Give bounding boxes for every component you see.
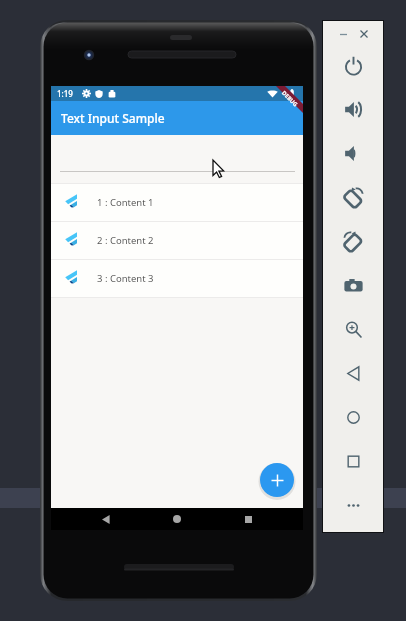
button[interactable]: Minimize — [333, 25, 353, 43]
button[interactable]: Home — [323, 395, 383, 439]
button[interactable]: Recents — [237, 508, 259, 530]
button[interactable]: Close — [354, 25, 374, 43]
button[interactable]: Power — [323, 43, 383, 87]
button[interactable]: Volume down — [323, 131, 383, 175]
staticText: 2 : Content 2 — [97, 234, 154, 247]
button[interactable]: Back — [95, 508, 117, 530]
button[interactable]: 1 : Content 1 — [51, 184, 303, 221]
button[interactable]: Rotate right — [323, 219, 383, 263]
button[interactable]: Screenshot — [323, 263, 383, 307]
button[interactable]: Overview — [323, 439, 383, 483]
button[interactable]: Add — [260, 463, 294, 497]
button[interactable]: Zoom — [323, 307, 383, 351]
button[interactable]: Volume up — [323, 87, 383, 131]
button[interactable]: 3 : Content 3 — [51, 260, 303, 297]
button[interactable]: More options — [323, 483, 383, 527]
staticText: DEBUG — [280, 89, 300, 109]
button[interactable]: Home — [166, 508, 188, 530]
button[interactable]: Back — [323, 351, 383, 395]
staticText: 1:19 — [57, 88, 73, 99]
staticText: 3 : Content 3 — [97, 272, 154, 285]
button[interactable]: 2 : Content 2 — [51, 222, 303, 259]
staticText: Text Input Sample — [61, 110, 165, 126]
staticText: 1 : Content 1 — [97, 196, 154, 209]
button[interactable]: Rotate left — [323, 175, 383, 219]
